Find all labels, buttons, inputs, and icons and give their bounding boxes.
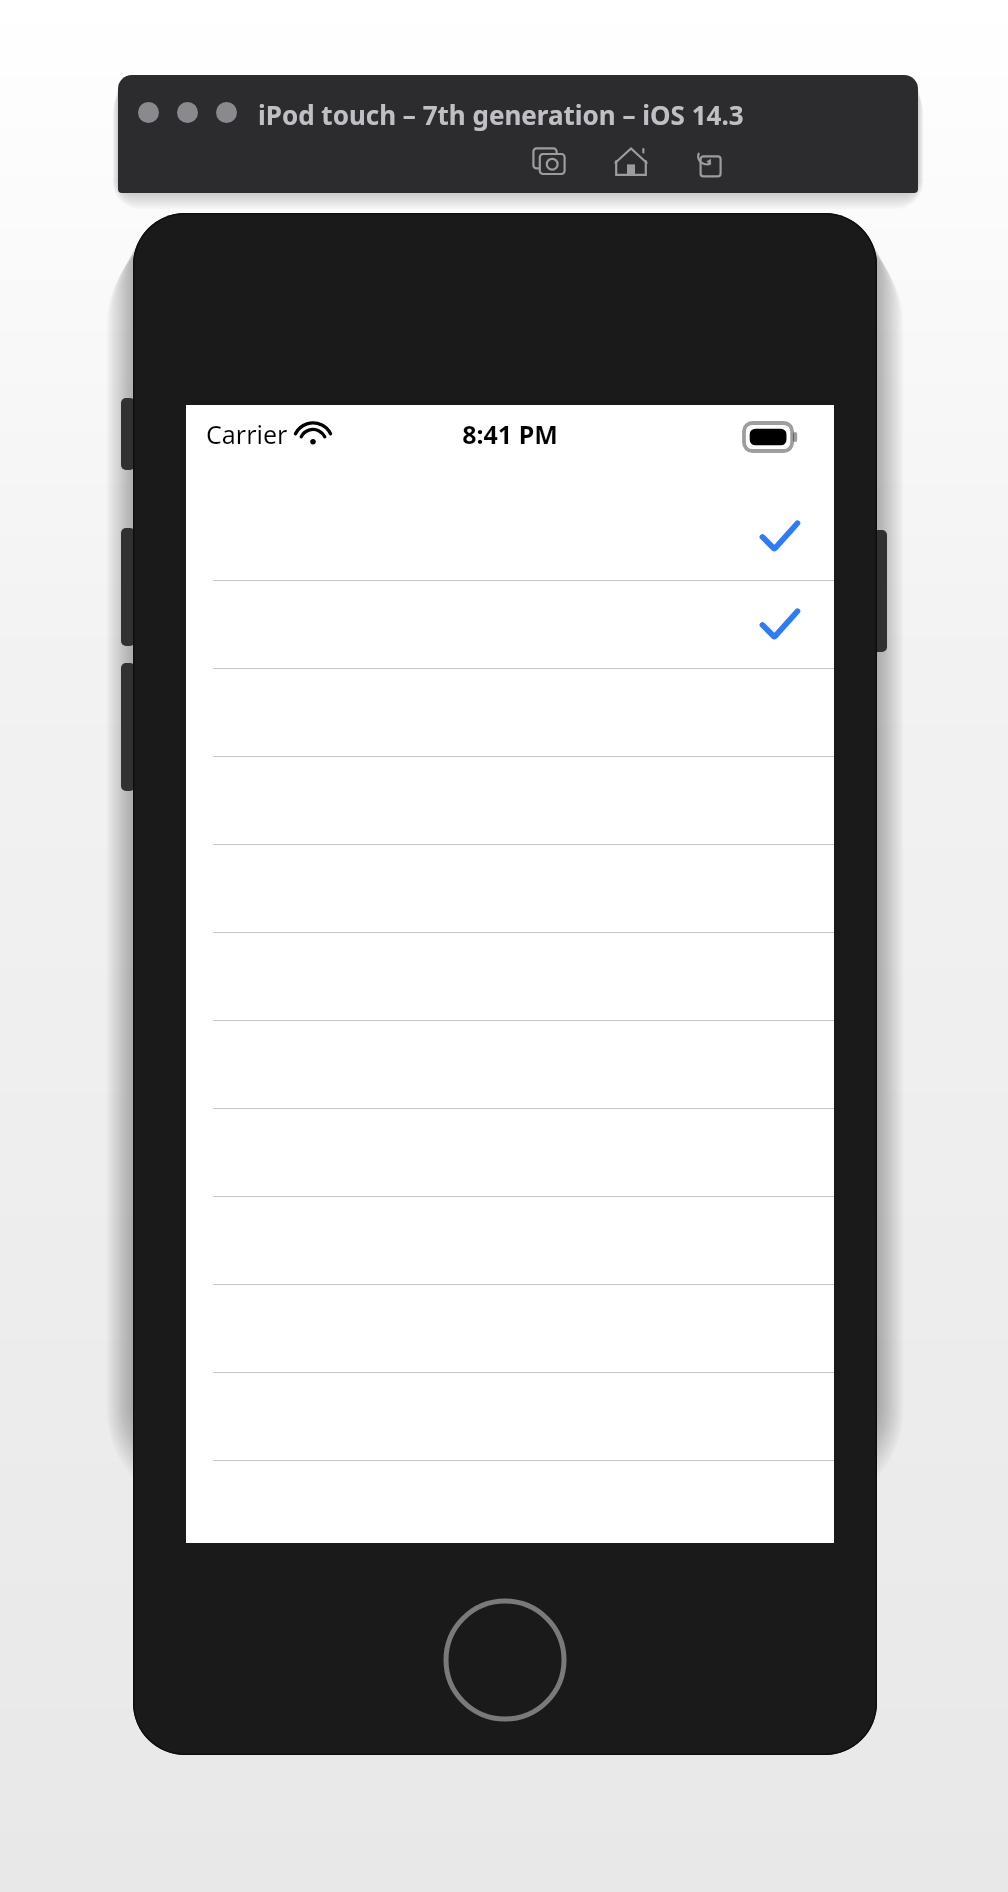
button[interactable]: Home	[608, 139, 654, 185]
button[interactable]: Maximize window	[216, 102, 237, 123]
button[interactable]	[186, 1021, 834, 1109]
button[interactable]: Close window	[138, 102, 159, 123]
button[interactable]	[186, 669, 834, 757]
staticText: iPod touch – 7th generation – iOS 14.3	[258, 97, 878, 132]
button[interactable]: Rotate device	[688, 139, 734, 185]
button[interactable]	[186, 845, 834, 933]
button[interactable]	[186, 1197, 834, 1285]
button[interactable]	[186, 1373, 834, 1461]
button[interactable]	[186, 581, 834, 669]
button[interactable]: Take screenshot	[528, 139, 574, 185]
button[interactable]: Minimize window	[177, 102, 198, 123]
button[interactable]	[186, 933, 834, 1021]
button[interactable]	[186, 493, 834, 581]
staticText: Carrier	[206, 417, 288, 451]
button[interactable]: Home button	[443, 1598, 567, 1722]
button[interactable]	[186, 1285, 834, 1373]
staticText: 8:41 PM	[186, 417, 834, 451]
button[interactable]	[186, 1109, 834, 1197]
button[interactable]	[186, 757, 834, 845]
